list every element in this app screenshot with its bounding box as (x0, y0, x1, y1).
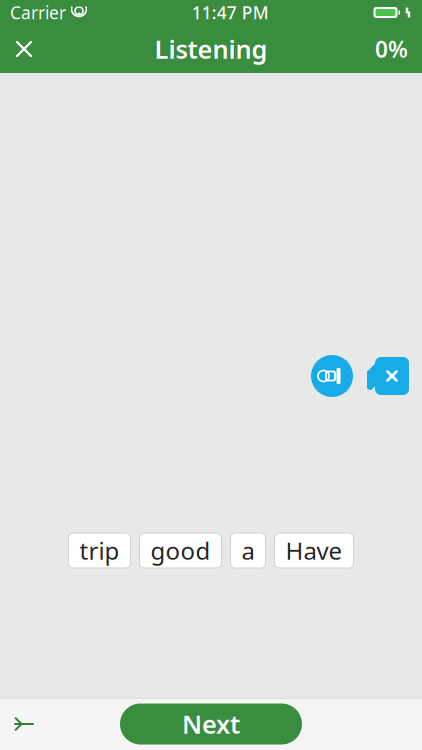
button[interactable]: Play audio (311, 355, 353, 397)
button[interactable]: Have (274, 533, 353, 568)
staticText: Next (182, 707, 240, 741)
button[interactable]: Close (2, 25, 46, 73)
staticText: trip (79, 535, 119, 566)
button[interactable]: a (230, 533, 265, 568)
button[interactable]: 0% (356, 25, 408, 73)
staticText: good (150, 535, 210, 566)
button[interactable]: Next (120, 703, 302, 744)
button[interactable]: Play slow audio (364, 357, 412, 395)
staticText: Carrier (10, 1, 66, 24)
button[interactable]: trip (68, 533, 130, 568)
button[interactable]: good (139, 533, 221, 568)
staticText: a (241, 535, 254, 566)
staticText: 0% (375, 34, 408, 64)
button[interactable]: Back (2, 702, 46, 746)
staticText: 11:47 PM (192, 1, 269, 24)
staticText: Have (285, 535, 342, 566)
staticText: Listening (154, 32, 267, 66)
